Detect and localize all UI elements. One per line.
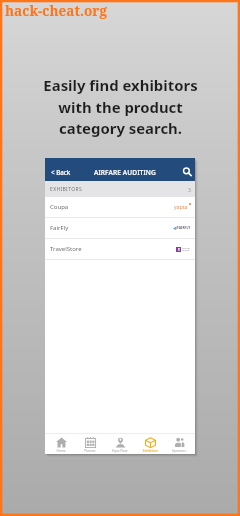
button[interactable]: FairFly — [45, 218, 195, 239]
button[interactable]: Exhibitors — [136, 434, 164, 453]
button[interactable]: Coupa — [45, 197, 195, 218]
button[interactable]: Search — [179, 164, 195, 180]
staticText: EXHIBITORS — [50, 186, 82, 193]
staticText: FAIRFLY — [177, 226, 191, 230]
staticText: AIRFARE AUDITING — [94, 168, 156, 177]
staticText: hack-cheat.org — [5, 1, 107, 20]
button[interactable]: Planner — [76, 434, 104, 453]
staticText: Planner — [84, 449, 96, 453]
staticText: Coupa — [50, 203, 69, 211]
staticText: Exhibitors — [143, 449, 158, 453]
button[interactable]: < Back — [50, 165, 72, 179]
staticText: Expo Floor — [112, 449, 128, 453]
button[interactable]: Expo Floor — [106, 434, 134, 453]
staticText: yapta — [174, 203, 188, 210]
staticText: Sponsors — [172, 449, 186, 453]
staticText: Home — [56, 449, 66, 453]
staticText: Easily find exhibitors with the product … — [43, 75, 198, 138]
button[interactable]: TravelStore — [45, 239, 195, 260]
staticText: T — [178, 248, 180, 252]
staticText: 3 — [188, 186, 191, 193]
staticText: TravelStore — [50, 245, 82, 253]
button[interactable]: Home — [47, 434, 75, 453]
staticText: < Back — [51, 168, 71, 176]
staticText: TRAVEL STORE — [182, 246, 191, 252]
staticText: FairFly — [50, 224, 69, 232]
button[interactable]: Sponsors — [165, 434, 193, 453]
